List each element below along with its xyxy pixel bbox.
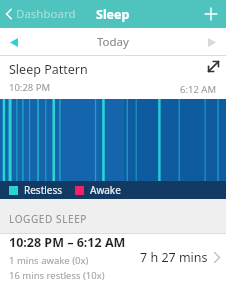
staticText: 6:12 AM bbox=[180, 83, 217, 96]
staticText: Awake bbox=[90, 183, 121, 197]
button[interactable]: 10:28 PM – 6:12 AM bbox=[0, 234, 226, 281]
staticText: Sleep Pattern bbox=[9, 61, 88, 78]
staticText: LOGGED SLEEP bbox=[9, 212, 87, 226]
staticText: Today bbox=[97, 34, 129, 50]
staticText: 7 h 27 mins bbox=[140, 249, 208, 266]
staticText: 16 mins restless (10x) bbox=[9, 269, 105, 281]
staticText: 1 mins awake (0x) bbox=[9, 254, 89, 267]
button[interactable]: Previous day bbox=[0, 31, 28, 54]
button[interactable]: Add sleep log bbox=[196, 1, 226, 27]
staticText: Sleep bbox=[96, 6, 130, 23]
button[interactable]: Expand chart bbox=[201, 56, 226, 77]
staticText: 10:28 PM – 6:12 AM bbox=[9, 234, 126, 251]
staticText: Restless bbox=[24, 183, 63, 197]
staticText: 10:28 PM bbox=[9, 81, 51, 94]
button[interactable]: Next day bbox=[198, 31, 226, 54]
button[interactable]: Dashboard bbox=[0, 2, 82, 26]
staticText: Dashboard bbox=[16, 6, 76, 22]
